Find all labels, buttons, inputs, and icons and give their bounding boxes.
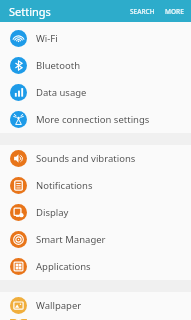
staticText: Wallpaper [36, 299, 82, 312]
button[interactable]: Home screen and themes [0, 319, 191, 320]
button[interactable]: Notifications [0, 172, 191, 199]
button[interactable]: Applications [0, 253, 191, 280]
staticText: Data usage [36, 86, 87, 99]
button[interactable]: Display [0, 199, 191, 226]
button[interactable]: SEARCH [125, 4, 160, 19]
staticText: Applications [36, 260, 91, 273]
button[interactable]: Smart Manager [0, 226, 191, 253]
staticText: Wi-Fi [36, 32, 58, 45]
staticText: Display [36, 206, 69, 219]
staticText: SEARCH [130, 7, 155, 16]
button[interactable]: Sounds and vibrations [0, 145, 191, 172]
button[interactable]: Bluetooth [0, 52, 191, 79]
staticText: Sounds and vibrations [36, 152, 136, 165]
staticText: Notifications [36, 179, 93, 192]
staticText: MORE [165, 7, 184, 16]
button[interactable]: Wi-Fi [0, 25, 191, 52]
button[interactable]: More connection settings [0, 106, 191, 133]
staticText: Smart Manager [36, 233, 106, 246]
button[interactable]: MORE [160, 4, 191, 19]
button[interactable]: Data usage [0, 79, 191, 106]
staticText: Bluetooth [36, 59, 81, 72]
staticText: More connection settings [36, 113, 150, 126]
staticText: Settings [9, 4, 51, 19]
button[interactable]: Wallpaper [0, 292, 191, 319]
